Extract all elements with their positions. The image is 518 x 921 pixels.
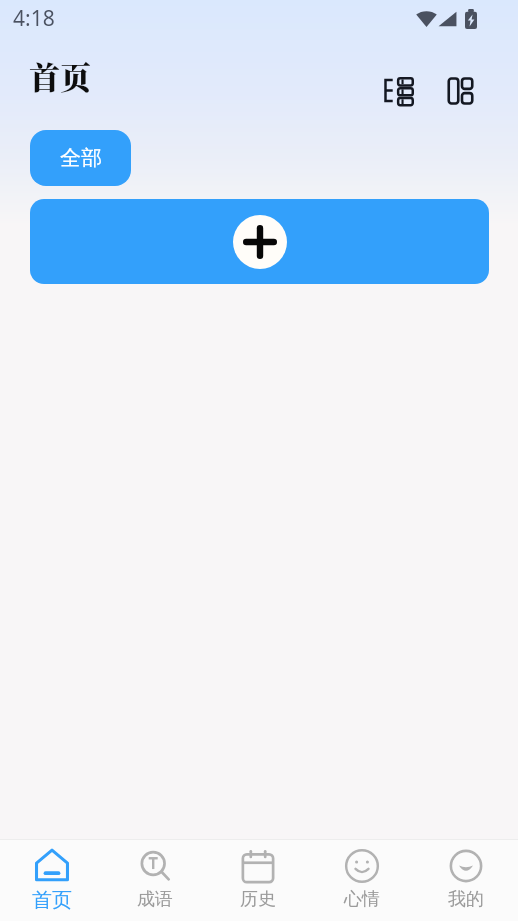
- staticText: 历史: [240, 888, 276, 911]
- staticText: 成语: [137, 888, 173, 911]
- staticText: 全部: [60, 145, 102, 171]
- staticText: 首页: [29, 53, 91, 98]
- button[interactable]: Add new: [30, 199, 489, 284]
- button[interactable]: 成语: [103, 840, 206, 921]
- staticText: 首页: [32, 888, 72, 913]
- button[interactable]: Change layout: [438, 69, 482, 113]
- button[interactable]: 心情: [310, 840, 414, 921]
- staticText: 心情: [344, 888, 380, 911]
- staticText: 我的: [448, 888, 484, 911]
- button[interactable]: 我的: [414, 840, 518, 921]
- staticText: 4:18: [13, 4, 55, 33]
- button[interactable]: 历史: [206, 840, 310, 921]
- button[interactable]: 全部: [30, 130, 131, 186]
- button[interactable]: 首页: [0, 840, 103, 921]
- button[interactable]: Sort list: [377, 69, 421, 113]
